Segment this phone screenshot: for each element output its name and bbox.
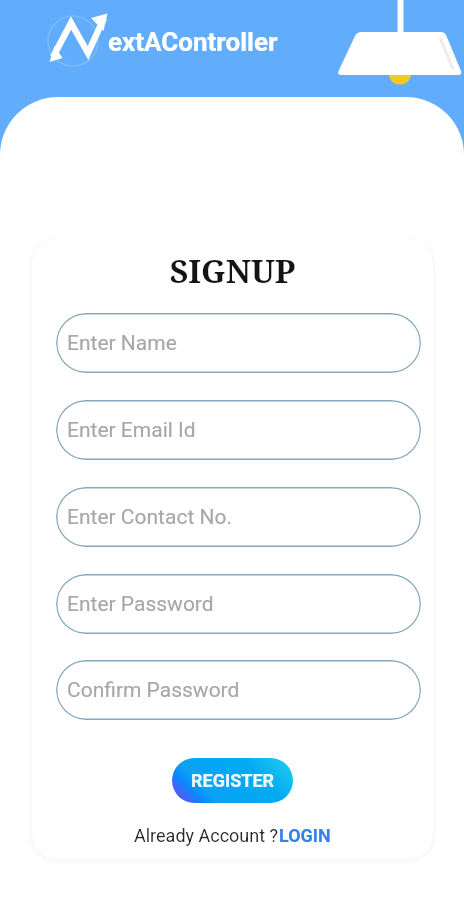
button[interactable]: Enter Email Id [56,400,421,460]
staticText: Enter Email Id [67,418,196,443]
staticText: Confirm Password [67,678,240,703]
button[interactable]: REGISTER [172,758,293,803]
staticText: Enter Contact No. [67,505,232,530]
button[interactable]: Enter Contact No. [56,487,421,547]
button[interactable]: Already Account ? [134,825,331,846]
staticText: Already Account ? [134,825,279,846]
staticText: SIGNUP [32,249,433,293]
button[interactable]: Enter Password [56,574,421,634]
staticText: extAController [108,27,278,57]
button[interactable]: NextAController [48,12,278,72]
staticText: LOGIN [279,825,331,846]
button[interactable]: Enter Name [56,313,421,373]
staticText: Enter Password [67,592,214,617]
staticText: REGISTER [191,770,275,791]
staticText: Enter Name [67,331,177,356]
button[interactable]: Confirm Password [56,660,421,720]
